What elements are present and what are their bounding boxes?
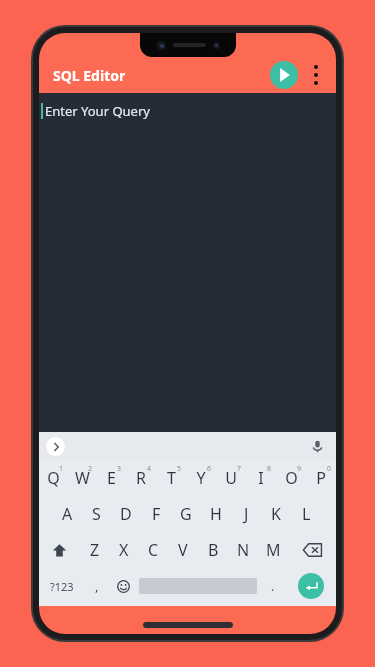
staticText: Q — [47, 467, 60, 489]
staticText: Z — [90, 539, 100, 561]
button[interactable]: More options — [306, 59, 326, 91]
staticText: R — [136, 467, 146, 489]
button[interactable]: Q — [39, 460, 68, 496]
staticText: I — [258, 467, 264, 489]
button[interactable]: Enter Your Query — [39, 93, 336, 432]
button[interactable]: X — [109, 532, 138, 568]
button[interactable]: , — [84, 568, 110, 604]
button[interactable]: Emoji — [110, 568, 136, 604]
staticText: 0 — [327, 464, 332, 474]
button[interactable]: A — [53, 496, 82, 532]
staticText: M — [266, 539, 281, 561]
staticText: . — [271, 577, 275, 595]
staticText: O — [285, 467, 298, 489]
button[interactable]: Y — [186, 460, 216, 496]
staticText: D — [120, 503, 132, 525]
staticText: 1 — [59, 464, 64, 474]
button[interactable]: I — [246, 460, 276, 496]
staticText: 8 — [267, 464, 272, 474]
staticText: ?123 — [50, 579, 74, 594]
button[interactable]: G — [171, 496, 201, 532]
button[interactable]: F — [141, 496, 171, 532]
button[interactable]: Enter — [298, 573, 324, 599]
button[interactable]: M — [258, 532, 288, 568]
button[interactable]: D — [111, 496, 141, 532]
button[interactable]: K — [261, 496, 291, 532]
staticText: 5 — [177, 464, 182, 474]
button[interactable]: E — [97, 460, 126, 496]
button[interactable]: U — [216, 460, 246, 496]
staticText: 6 — [207, 464, 212, 474]
button[interactable]: H — [201, 496, 231, 532]
button[interactable]: ?123 — [39, 568, 84, 604]
button[interactable]: Run query — [270, 61, 298, 89]
staticText: W — [75, 467, 90, 489]
button[interactable]: Z — [80, 532, 109, 568]
staticText: 2 — [88, 464, 93, 474]
button[interactable]: Shift — [39, 532, 80, 568]
button[interactable]: Voice input — [307, 436, 327, 456]
button[interactable]: W — [68, 460, 97, 496]
staticText: T — [167, 467, 176, 489]
button[interactable]: L — [291, 496, 321, 532]
staticText: E — [107, 467, 116, 489]
staticText: P — [316, 467, 326, 489]
staticText: Y — [196, 467, 206, 489]
staticText: X — [119, 539, 129, 561]
button[interactable]: C — [138, 532, 168, 568]
button[interactable]: P — [306, 460, 336, 496]
staticText: A — [62, 503, 73, 525]
staticText: V — [178, 539, 188, 561]
button[interactable]: V — [168, 532, 198, 568]
staticText: F — [152, 503, 161, 525]
staticText: SQL Editor — [53, 66, 126, 85]
staticText: H — [210, 503, 222, 525]
staticText: C — [148, 539, 159, 561]
button[interactable]: N — [228, 532, 258, 568]
button[interactable]: T — [156, 460, 186, 496]
staticText: L — [302, 503, 311, 525]
button[interactable]: Backspace — [288, 532, 336, 568]
button[interactable]: S — [82, 496, 111, 532]
button[interactable]: O — [276, 460, 306, 496]
staticText: S — [92, 503, 101, 525]
staticText: B — [208, 539, 219, 561]
button[interactable]: . — [260, 568, 286, 604]
button[interactable]: Expand suggestions — [46, 437, 65, 456]
staticText: U — [225, 467, 237, 489]
staticText: 4 — [147, 464, 152, 474]
staticText: 7 — [237, 464, 242, 474]
staticText: , — [95, 577, 99, 595]
staticText: G — [180, 503, 192, 525]
staticText: Enter Your Query — [45, 102, 150, 120]
staticText: 9 — [297, 464, 302, 474]
staticText: 3 — [117, 464, 122, 474]
staticText: J — [244, 503, 249, 525]
button[interactable]: J — [231, 496, 261, 532]
button[interactable]: B — [198, 532, 228, 568]
staticText: K — [271, 503, 281, 525]
staticText: N — [237, 539, 250, 561]
button[interactable]: R — [126, 460, 156, 496]
